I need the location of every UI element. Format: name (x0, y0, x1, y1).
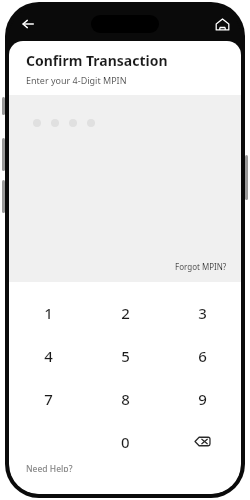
button[interactable]: 3 (164, 291, 241, 334)
staticText: 7 (44, 389, 53, 409)
button[interactable]: Need Help? (26, 463, 73, 472)
staticText: Confirm Transaction (26, 51, 168, 70)
staticText: 9 (198, 389, 207, 409)
button[interactable]: 9 (164, 377, 241, 420)
button[interactable]: 1 (9, 291, 87, 334)
button[interactable]: 4 (9, 334, 87, 377)
button[interactable]: 6 (164, 334, 241, 377)
button[interactable]: 5 (87, 334, 164, 377)
staticText: 4 (44, 346, 53, 366)
staticText: Forgot MPIN? (175, 261, 227, 272)
staticText: 6 (198, 346, 207, 366)
staticText: Enter your 4-Digit MPIN (26, 74, 127, 86)
button[interactable]: Forgot MPIN? (175, 261, 227, 272)
staticText: 3 (198, 303, 207, 323)
staticText: 0 (121, 432, 130, 452)
staticText: 2 (121, 303, 130, 323)
button[interactable]: Back (15, 11, 41, 37)
button[interactable]: 0 (87, 420, 164, 463)
button[interactable]: 8 (87, 377, 164, 420)
staticText: 8 (121, 389, 130, 409)
staticText: 1 (44, 303, 53, 323)
staticText: Need Help? (26, 463, 73, 472)
button[interactable]: 7 (9, 377, 87, 420)
staticText: 5 (121, 346, 130, 366)
button[interactable]: 2 (87, 291, 164, 334)
button[interactable]: Home (209, 11, 235, 37)
button[interactable]: Backspace (164, 420, 241, 463)
